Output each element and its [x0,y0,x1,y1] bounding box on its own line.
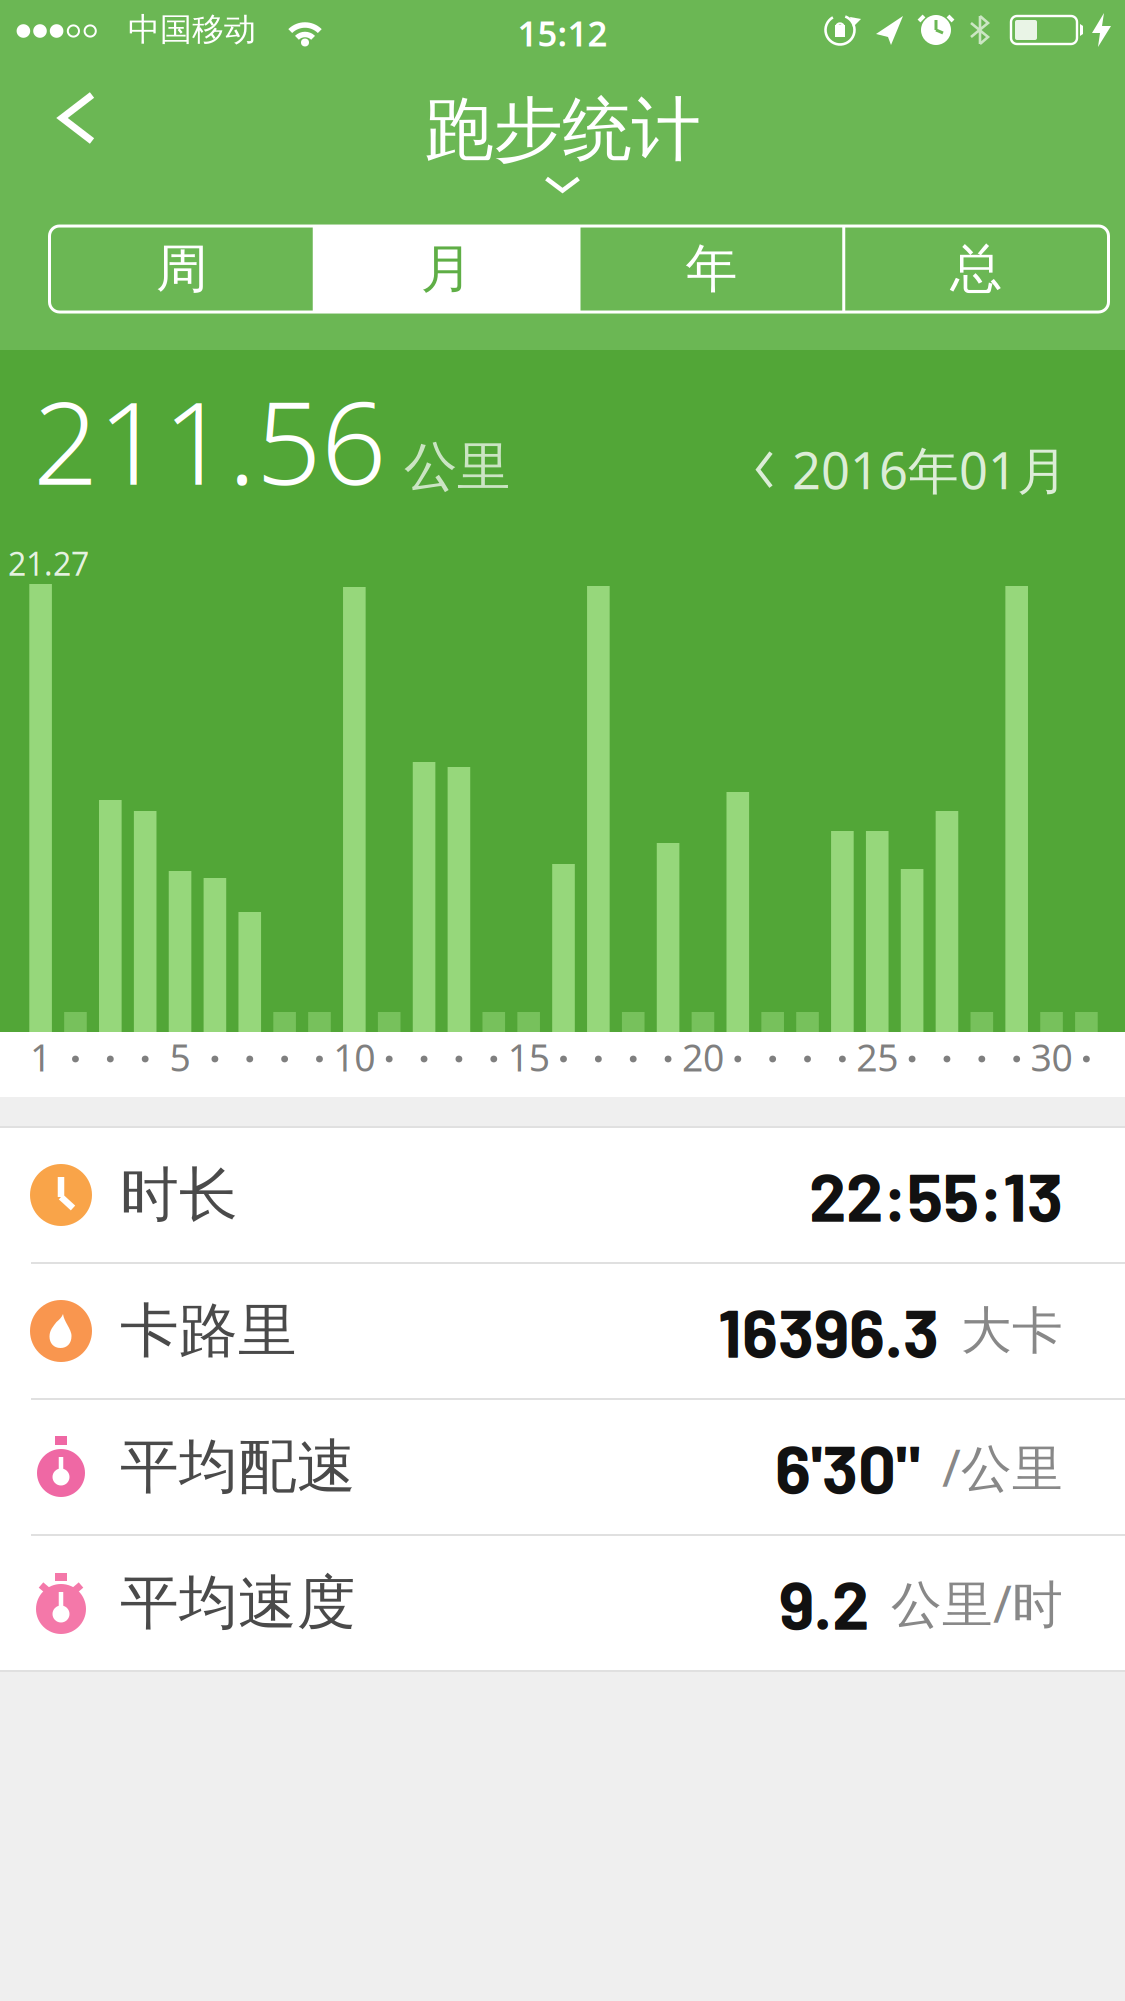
staticText: 9.2 [779,1563,869,1643]
staticText: 10 [333,1032,375,1082]
staticText: 16396.3 [718,1291,939,1371]
staticText: 月 [421,237,473,301]
staticText: 公里 [404,434,510,500]
staticText: 大卡 [961,1300,1063,1362]
staticText: 跑步统计 [424,87,700,173]
staticText: 中国移动 [128,10,256,49]
staticText: 总 [950,237,1002,301]
staticText: 20 [682,1032,724,1082]
staticText: 15 [508,1032,550,1082]
button[interactable]: Back [0,66,130,186]
staticText: 15:12 [517,10,607,56]
button[interactable]: 周 [49,226,314,312]
staticText: 1 [30,1032,51,1082]
button[interactable]: 年 [579,226,844,312]
staticText: 公里/时 [891,1569,1063,1637]
staticText: 21.27 [8,542,89,584]
staticText: 25 [856,1032,898,1082]
button[interactable]: 月 [314,226,579,312]
button[interactable]: 跑步统计 [362,80,762,200]
staticText: 5 [169,1032,190,1082]
staticText: 周 [156,237,208,301]
button[interactable]: Previous month [758,436,1068,503]
button[interactable]: 总 [844,226,1109,312]
staticText: 年 [685,237,737,301]
staticText: 22:55:13 [809,1155,1063,1235]
staticText: 平均速度 [120,1567,356,1639]
staticText: 时长 [120,1159,238,1231]
staticText: 211.56 [33,364,386,516]
staticText: 2016年01月 [792,436,1068,503]
staticText: 平均配速 [120,1431,356,1503]
staticText: /公里 [942,1433,1063,1501]
staticText: 6'30" [775,1427,920,1507]
staticText: 30 [1030,1032,1072,1082]
staticText: 卡路里 [120,1295,297,1367]
